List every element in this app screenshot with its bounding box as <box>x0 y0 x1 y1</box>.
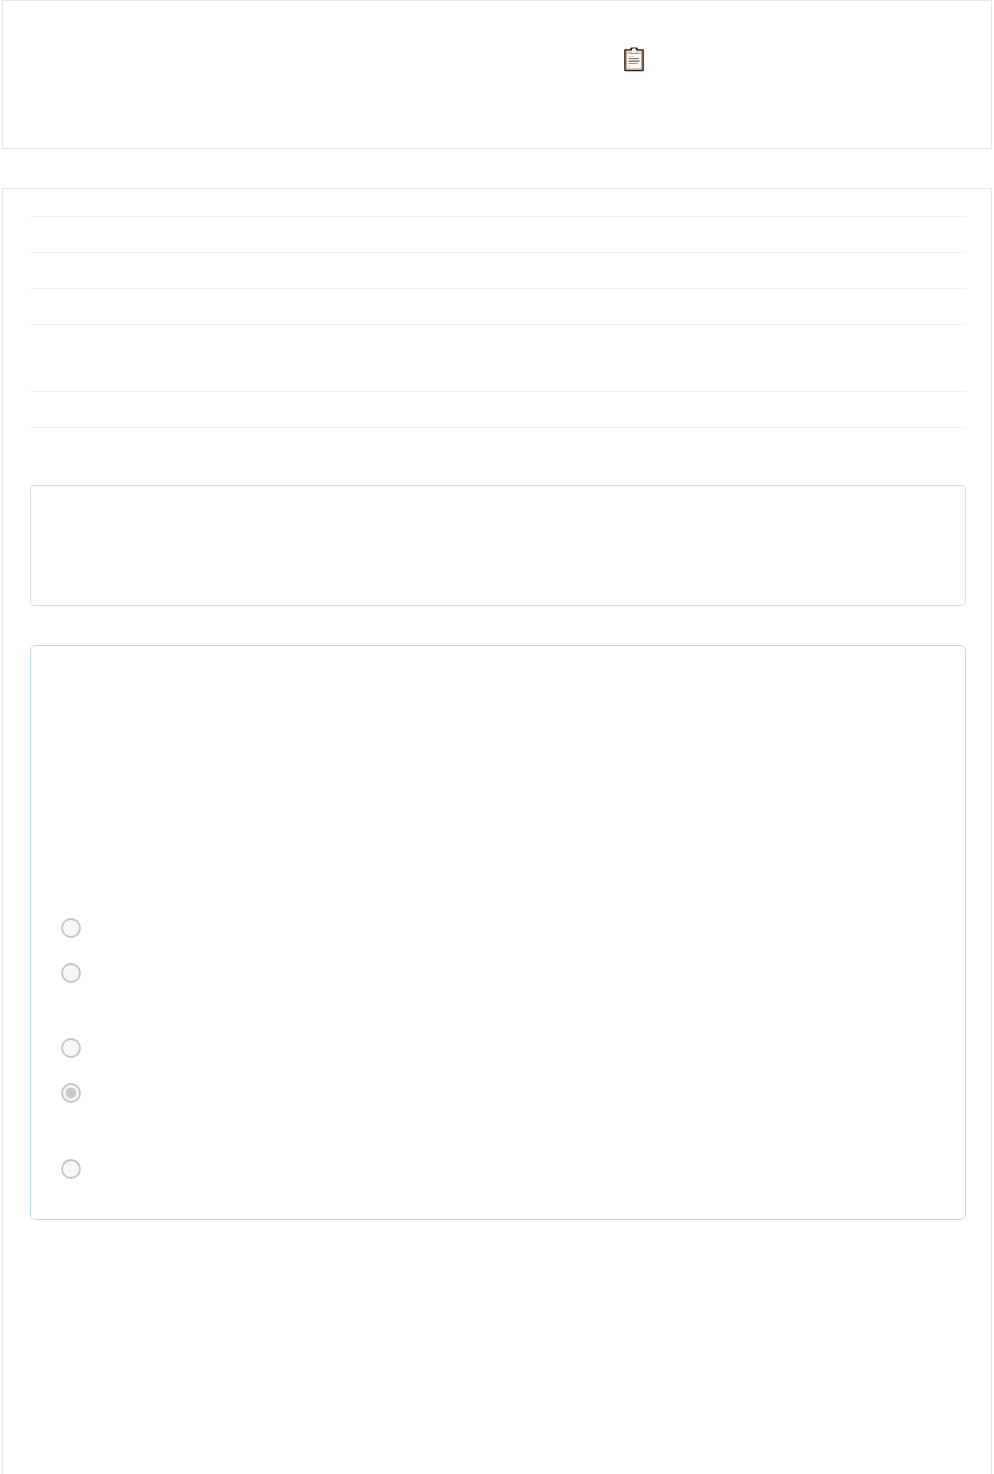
button[interactable]: Option <box>30 1159 966 1179</box>
button[interactable]: Selected option <box>30 1083 966 1103</box>
button[interactable]: Option <box>30 963 966 983</box>
button[interactable]: Name <box>30 188 966 217</box>
button[interactable]: Option <box>30 1038 966 1058</box>
button[interactable]: Option <box>30 918 966 938</box>
other: Form <box>623 47 645 72</box>
button[interactable] <box>30 485 966 606</box>
